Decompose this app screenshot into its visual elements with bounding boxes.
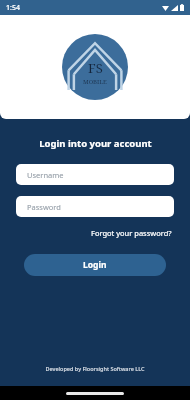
staticText: Password bbox=[27, 202, 61, 212]
staticText: FS bbox=[88, 59, 103, 77]
button[interactable]: Password bbox=[16, 196, 174, 217]
staticText: Forgot your password? bbox=[91, 228, 172, 238]
staticText: Developed by Floorsight Software LLC bbox=[45, 365, 145, 372]
staticText: Login into your account bbox=[39, 137, 152, 150]
staticText: MOBILE bbox=[83, 78, 107, 86]
staticText: 1:54 bbox=[6, 3, 20, 13]
staticText: Username bbox=[27, 170, 64, 180]
button[interactable]: Username bbox=[16, 164, 174, 185]
button[interactable]: Forgot your password? bbox=[89, 226, 174, 240]
staticText: Login bbox=[83, 259, 107, 271]
button[interactable]: Login bbox=[24, 254, 166, 276]
